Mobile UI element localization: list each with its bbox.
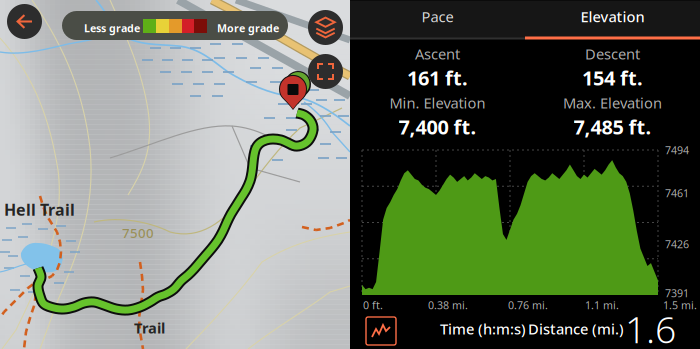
staticText: 161 ft. — [407, 64, 468, 91]
staticText: 7426 — [665, 237, 689, 251]
staticText: Min. Elevation — [389, 93, 485, 112]
button[interactable]: Back — [7, 4, 42, 39]
staticText: 154 ft. — [582, 64, 643, 91]
staticText: Pace — [421, 7, 453, 26]
button[interactable]: Full screen — [308, 54, 343, 89]
staticText: 7494 — [665, 143, 689, 157]
staticText: More grade — [217, 21, 279, 35]
staticText: 0.38 mi. — [428, 298, 468, 312]
staticText: Time (h:m:s) — [440, 319, 526, 338]
staticText: 1.6 — [625, 304, 676, 349]
button[interactable]: Map layers — [308, 10, 343, 45]
staticText: 1.1 mi. — [585, 298, 619, 312]
staticText: 7,400 ft. — [398, 113, 476, 140]
staticText: 7461 — [665, 186, 689, 200]
staticText: Less grade — [84, 21, 140, 35]
staticText: Trail — [134, 318, 165, 337]
button[interactable]: Chart metric — [366, 317, 396, 345]
staticText: Hell Trail — [4, 199, 75, 220]
button[interactable]: Pace — [350, 0, 525, 38]
staticText: 1.5 mi. — [663, 298, 697, 312]
staticText: Descent — [585, 44, 640, 63]
staticText: 7500 — [122, 224, 154, 242]
staticText: 7391 — [665, 286, 689, 300]
staticText: Distance (mi.) — [528, 319, 624, 338]
staticText: 7,485 ft. — [573, 113, 651, 140]
staticText: 0.76 mi. — [508, 298, 548, 312]
staticText: Elevation — [580, 7, 644, 26]
button[interactable]: Elevation — [525, 0, 700, 38]
staticText: Ascent — [415, 44, 460, 63]
staticText: Max. Elevation — [563, 93, 662, 112]
staticText: 0 ft. — [363, 298, 383, 312]
